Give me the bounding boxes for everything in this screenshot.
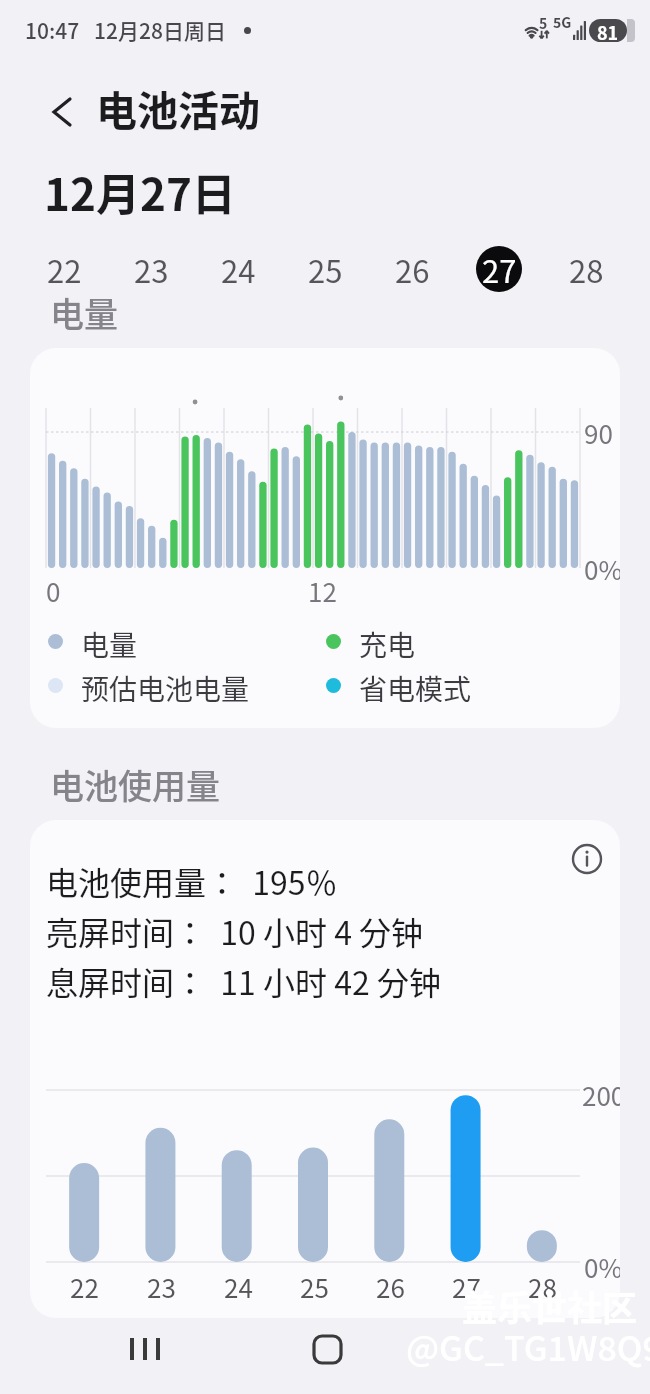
staticText: 90: [584, 414, 613, 452]
button[interactable]: 25: [302, 246, 348, 292]
staticText: 27: [452, 1268, 481, 1306]
staticText: 27: [482, 247, 517, 292]
staticText: 亮屏时间： 10 小时 4 分钟: [46, 908, 424, 954]
staticText: 24: [221, 247, 256, 292]
staticText: 24: [224, 1268, 253, 1306]
button[interactable]: 27: [476, 246, 522, 292]
button[interactable]: [314, 1336, 341, 1363]
staticText: 电池使用量： 195％: [46, 858, 338, 904]
staticText: 25: [300, 1268, 329, 1306]
staticText: 息屏时间： 11 小时 42 分钟: [46, 958, 441, 1004]
button[interactable]: 24: [215, 246, 261, 292]
staticText: 81: [597, 19, 619, 42]
staticText: 省电模式: [359, 668, 472, 702]
staticText: 26: [376, 1268, 405, 1306]
button[interactable]: 28: [563, 246, 609, 292]
staticText: 电池活动: [96, 78, 260, 137]
staticText: 26: [395, 247, 430, 292]
staticText: 23: [134, 247, 169, 292]
button[interactable]: 26: [389, 246, 435, 292]
staticText: 12月27日: [44, 160, 236, 224]
staticText: 12: [308, 572, 337, 610]
staticText: 22: [47, 247, 82, 292]
staticText: 200: [582, 1076, 620, 1114]
button[interactable]: 23: [128, 246, 174, 292]
button[interactable]: [130, 1338, 160, 1360]
staticText: 电量: [81, 624, 138, 658]
button[interactable]: [34, 84, 90, 140]
staticText: 盖乐世社区: [462, 1280, 638, 1331]
staticText: 0%: [584, 1248, 620, 1286]
staticText: 电池使用量: [50, 760, 220, 809]
staticText: 23: [147, 1268, 176, 1306]
staticText: 22: [70, 1268, 99, 1306]
staticText: 12月28日周日: [94, 15, 226, 45]
staticText: 电量: [50, 288, 118, 337]
staticText: 预估电池电量: [81, 668, 250, 702]
staticText: 充电: [359, 624, 416, 658]
staticText: 5G: [553, 12, 572, 32]
staticText: 5: [539, 13, 548, 33]
staticText: 10:47: [25, 15, 80, 45]
staticText: 25: [308, 247, 343, 292]
staticText: 28: [528, 1268, 557, 1306]
staticText: 28: [569, 247, 604, 292]
staticText: 0%: [584, 550, 620, 588]
button[interactable]: 22: [41, 246, 87, 292]
staticText: 0: [46, 572, 61, 610]
staticText: @GC_TG1W8Q9: [406, 1322, 650, 1371]
button[interactable]: [572, 844, 602, 874]
